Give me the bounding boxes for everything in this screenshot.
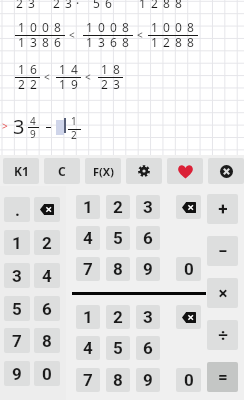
staticText: 6	[30, 61, 37, 77]
staticText: 9	[71, 76, 78, 92]
staticText: 9	[12, 364, 22, 384]
staticText: 1	[59, 76, 66, 92]
button[interactable]: K1	[3, 158, 39, 184]
staticText: <	[44, 70, 50, 84]
staticText: 4	[83, 338, 93, 358]
button[interactable]: 4	[76, 226, 100, 250]
button[interactable]: ÷	[207, 320, 238, 350]
button[interactable]: 2	[106, 305, 130, 329]
staticText: ÷	[218, 325, 228, 345]
staticText: 3	[98, 34, 105, 50]
button[interactable]: 8	[106, 257, 130, 281]
button[interactable]: +	[207, 194, 238, 224]
staticText: F(X)	[93, 164, 114, 179]
staticText: ×	[218, 283, 228, 303]
button[interactable]: 0	[176, 368, 201, 392]
staticText: 6	[105, 0, 112, 11]
button[interactable]: 1	[4, 230, 30, 255]
staticText: 1	[18, 61, 25, 77]
button[interactable]: 8	[34, 328, 60, 353]
staticText: 8	[187, 19, 194, 35]
button[interactable]: F(X)	[85, 158, 121, 184]
staticText: 6	[143, 338, 153, 358]
button[interactable]: 7	[76, 368, 100, 392]
staticText: 2	[30, 76, 37, 92]
button[interactable]: 9	[136, 257, 160, 281]
staticText: 6	[143, 228, 153, 248]
button[interactable]: 0	[34, 361, 60, 386]
staticText: 2	[18, 76, 25, 92]
button[interactable]: 3	[4, 263, 30, 288]
button[interactable]: Backspace	[34, 197, 60, 222]
button[interactable]: Favorite	[167, 158, 203, 184]
staticText: 1	[139, 0, 146, 11]
staticText: 1	[151, 19, 158, 35]
button[interactable]: 9	[4, 361, 30, 386]
staticText: 4	[30, 114, 36, 128]
staticText: 0	[184, 259, 194, 279]
button[interactable]: 0	[176, 257, 201, 281]
button[interactable]: 5	[106, 226, 130, 250]
staticText: K1	[14, 163, 29, 179]
button[interactable]: ×	[207, 278, 238, 308]
button[interactable]: 9	[136, 368, 160, 392]
button[interactable]: 7	[4, 328, 30, 353]
button[interactable]: .	[4, 197, 30, 222]
staticText: ·	[76, 0, 80, 11]
staticText: +	[218, 199, 228, 219]
button[interactable]: 4	[76, 336, 100, 360]
staticText: 9	[143, 259, 153, 279]
staticText: 8	[163, 0, 170, 11]
staticText: 0	[110, 19, 117, 35]
staticText: .	[15, 200, 20, 220]
button[interactable]: C	[44, 158, 80, 184]
staticText: 0	[98, 19, 105, 35]
staticText: C	[58, 163, 66, 179]
staticText: 3	[28, 0, 35, 11]
staticText: 8	[42, 331, 52, 351]
staticText: 0	[163, 19, 170, 35]
staticText: 8	[54, 19, 61, 35]
button[interactable]: Backspace	[176, 305, 201, 329]
staticText: 1	[18, 34, 25, 50]
staticText: 5	[12, 299, 22, 319]
button[interactable]: Settings	[126, 158, 162, 184]
staticText: 5	[113, 228, 123, 248]
button[interactable]: 1	[76, 195, 100, 219]
button[interactable]: 4	[34, 263, 60, 288]
staticText: 2	[16, 0, 23, 11]
button[interactable]: 6	[34, 296, 60, 321]
staticText: 3	[143, 307, 153, 327]
staticText: 1	[83, 307, 93, 327]
button[interactable]: =	[207, 362, 238, 392]
staticText: 1	[83, 197, 93, 217]
button[interactable]: 5	[106, 336, 130, 360]
button[interactable]: 2	[106, 195, 130, 219]
staticText: 0	[30, 19, 37, 35]
staticText: 9	[143, 370, 153, 390]
staticText: 7	[83, 259, 93, 279]
button[interactable]: 6	[136, 226, 160, 250]
button[interactable]: Close	[208, 158, 244, 184]
button[interactable]: 8	[106, 368, 130, 392]
staticText: 9	[30, 127, 36, 141]
button[interactable]: 5	[4, 296, 30, 321]
staticText: 1	[101, 61, 108, 77]
staticText: 0	[175, 19, 182, 35]
button[interactable]: Backspace	[176, 195, 201, 219]
button[interactable]: 6	[136, 336, 160, 360]
staticText: 1	[59, 61, 66, 77]
button[interactable]: −	[207, 236, 238, 266]
staticText: −	[218, 241, 228, 261]
button[interactable]: 2	[34, 230, 60, 255]
button[interactable]: 3	[136, 305, 160, 329]
button[interactable]: 7	[76, 257, 100, 281]
staticText: 8	[175, 34, 182, 50]
button[interactable]: 3	[136, 195, 160, 219]
staticText: 8	[122, 34, 129, 50]
staticText: 3	[143, 197, 153, 217]
staticText: 3	[12, 266, 22, 286]
staticText: 2	[113, 307, 123, 327]
staticText: 4	[83, 228, 93, 248]
button[interactable]: 1	[76, 305, 100, 329]
